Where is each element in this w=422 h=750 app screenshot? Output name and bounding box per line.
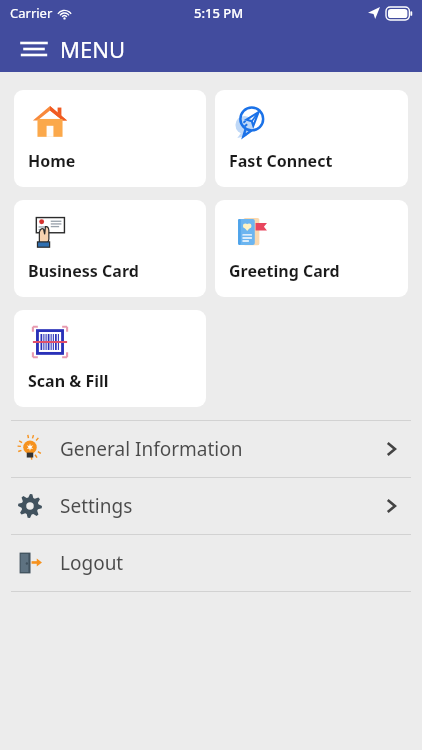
button[interactable]: Business Card — [14, 200, 206, 297]
staticText: Scan & Fill — [28, 370, 109, 392]
button[interactable]: Fast Connect — [215, 90, 408, 187]
button[interactable]: Settings — [0, 478, 422, 534]
button[interactable]: Home — [14, 90, 206, 187]
staticText: General Information — [60, 436, 243, 462]
staticText: Home — [28, 150, 76, 172]
staticText: Fast Connect — [229, 150, 333, 172]
button[interactable]: Open navigation menu — [14, 29, 54, 69]
button[interactable]: Greeting Card — [215, 200, 408, 297]
staticText: Settings — [60, 493, 133, 519]
staticText: 5:15 PM — [194, 4, 244, 22]
button[interactable]: General Information — [0, 421, 422, 477]
button[interactable]: Scan & Fill — [14, 310, 206, 407]
staticText: Greeting Card — [229, 260, 340, 282]
staticText: Carrier — [10, 4, 53, 22]
staticText: Logout — [60, 550, 124, 576]
staticText: MENU — [60, 34, 125, 64]
staticText: Business Card — [28, 260, 139, 282]
button[interactable]: Logout — [0, 535, 422, 591]
